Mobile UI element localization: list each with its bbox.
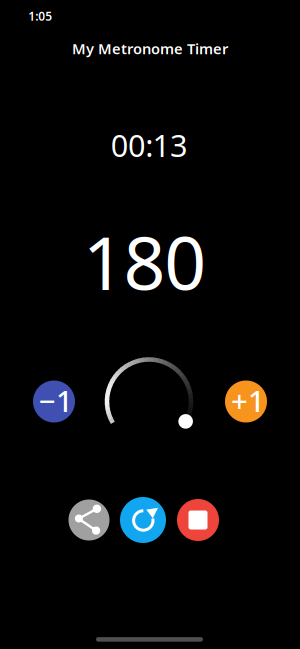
button[interactable]: Stop <box>177 499 219 541</box>
staticText: My Metronome Timer <box>72 39 228 58</box>
staticText: 00:13 <box>111 125 188 165</box>
button[interactable]: Share <box>68 499 109 540</box>
button[interactable]: Reset <box>120 497 166 543</box>
staticText: 1:05 <box>28 8 52 24</box>
staticText: +1 <box>231 381 265 420</box>
button[interactable]: +1 <box>225 380 267 422</box>
staticText: −1 <box>39 381 73 420</box>
button[interactable]: −1 <box>33 380 75 422</box>
staticText: 180 <box>83 213 206 310</box>
